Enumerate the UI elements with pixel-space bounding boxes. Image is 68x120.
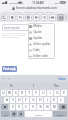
staticText: G [32, 98, 35, 102]
button[interactable]: G [30, 97, 36, 103]
button[interactable]: I [22, 82, 45, 89]
button[interactable]: Inline code [28, 53, 55, 59]
button[interactable]: List [41, 14, 48, 21]
button[interactable]: O [54, 90, 60, 96]
button[interactable]: S [10, 97, 15, 103]
button[interactable]: Text colour [25, 14, 32, 21]
button[interactable]: Lorem ipsum [2, 24, 31, 31]
button[interactable]: return [53, 111, 67, 117]
staticText: Done [58, 77, 66, 81]
staticText: M [53, 105, 56, 109]
other: Next field [7, 77, 10, 80]
staticText: X [18, 105, 20, 109]
button[interactable]: 123 [1, 111, 10, 117]
button[interactable]: Z [10, 104, 15, 110]
staticText: Inline code [33, 54, 48, 58]
staticText: E [15, 91, 17, 95]
button[interactable]: F [23, 97, 29, 103]
button[interactable]: Spoiler [28, 35, 55, 41]
button[interactable]: C [23, 104, 29, 110]
other: Previous field [2, 77, 5, 80]
button[interactable]: V [30, 104, 36, 110]
button[interactable]: Media [28, 23, 55, 29]
button[interactable]: P [61, 90, 67, 96]
staticText: Post reply [3, 67, 16, 71]
button[interactable]: W [7, 90, 12, 96]
button[interactable]: N [44, 104, 50, 110]
staticText: space [35, 113, 42, 116]
staticText: N [46, 105, 49, 109]
staticText: F [25, 98, 27, 102]
button[interactable]: Quote [28, 29, 55, 35]
staticText: A [6, 98, 8, 102]
button[interactable]: Shift [1, 104, 8, 110]
button[interactable]: A [4, 97, 9, 103]
staticText: Code [33, 48, 40, 52]
staticText: U [42, 91, 45, 95]
staticText: K [53, 98, 55, 102]
button[interactable]: Code [28, 47, 55, 53]
button[interactable]: Hi [0, 82, 22, 89]
staticText: Y [35, 91, 37, 95]
staticText: 123 [3, 113, 8, 116]
button[interactable]: The [45, 82, 68, 89]
button[interactable]: X [16, 104, 22, 110]
button[interactable]: Font size [17, 14, 24, 21]
staticText: Carrier [9, 1, 17, 4]
button[interactable]: I [47, 90, 53, 96]
staticText: V [32, 105, 34, 109]
staticText: Spoiler [33, 36, 43, 40]
button[interactable]: Inline spoiler [28, 41, 55, 47]
staticText: return [56, 113, 64, 116]
staticText: 11:04 AM [32, 1, 44, 5]
staticText: L [60, 98, 62, 102]
button[interactable]: space [25, 111, 52, 117]
staticText: Inline spoiler [33, 42, 51, 46]
staticText: P [63, 91, 65, 95]
staticText: I [33, 84, 34, 88]
button[interactable]: D [16, 97, 22, 103]
staticText: The [54, 84, 59, 88]
staticText: I [49, 91, 51, 95]
staticText: Quote [33, 30, 42, 34]
button[interactable]: M [51, 104, 57, 110]
staticText: Z [12, 105, 14, 109]
button[interactable]: Bold [9, 14, 16, 21]
button[interactable]: L [58, 97, 64, 103]
button[interactable]: U [40, 90, 46, 96]
button[interactable]: Y [33, 90, 39, 96]
staticText: R [21, 91, 23, 95]
button[interactable]: T [26, 90, 32, 96]
button[interactable]: Undo [1, 14, 8, 21]
button[interactable]: Link [49, 14, 56, 21]
button[interactable]: Emoji keyboard [11, 111, 17, 117]
button[interactable]: Quote block [65, 14, 67, 21]
button[interactable]: J [44, 97, 50, 103]
staticText: J [47, 98, 48, 102]
button[interactable]: K [51, 97, 57, 103]
staticText: W [8, 91, 11, 95]
button[interactable]: E [13, 90, 18, 96]
button[interactable]: H [37, 97, 43, 103]
staticText: B [39, 105, 42, 109]
button[interactable]: Post reply [2, 66, 17, 72]
staticText: O [56, 91, 59, 95]
staticText: Hi [10, 84, 13, 88]
staticText: Q [2, 91, 5, 95]
staticText: Lorem ipsum [2, 26, 20, 30]
button[interactable]: Dictation [18, 111, 24, 117]
staticText: T [28, 91, 30, 95]
staticText: D [18, 98, 21, 102]
button[interactable]: Backspace [59, 104, 67, 110]
button[interactable]: Insert [57, 14, 64, 21]
staticText: Media [33, 24, 42, 28]
button[interactable]: B [37, 104, 43, 110]
button[interactable]: Align [33, 14, 40, 21]
staticText: S [12, 98, 14, 102]
button[interactable]: R [19, 90, 25, 96]
staticText: forum.adabsurdumweb.com [16, 6, 57, 10]
button[interactable]: Q [1, 90, 6, 96]
staticText: H [39, 98, 42, 102]
staticText: C [25, 105, 27, 109]
staticText: 92% [54, 1, 59, 4]
